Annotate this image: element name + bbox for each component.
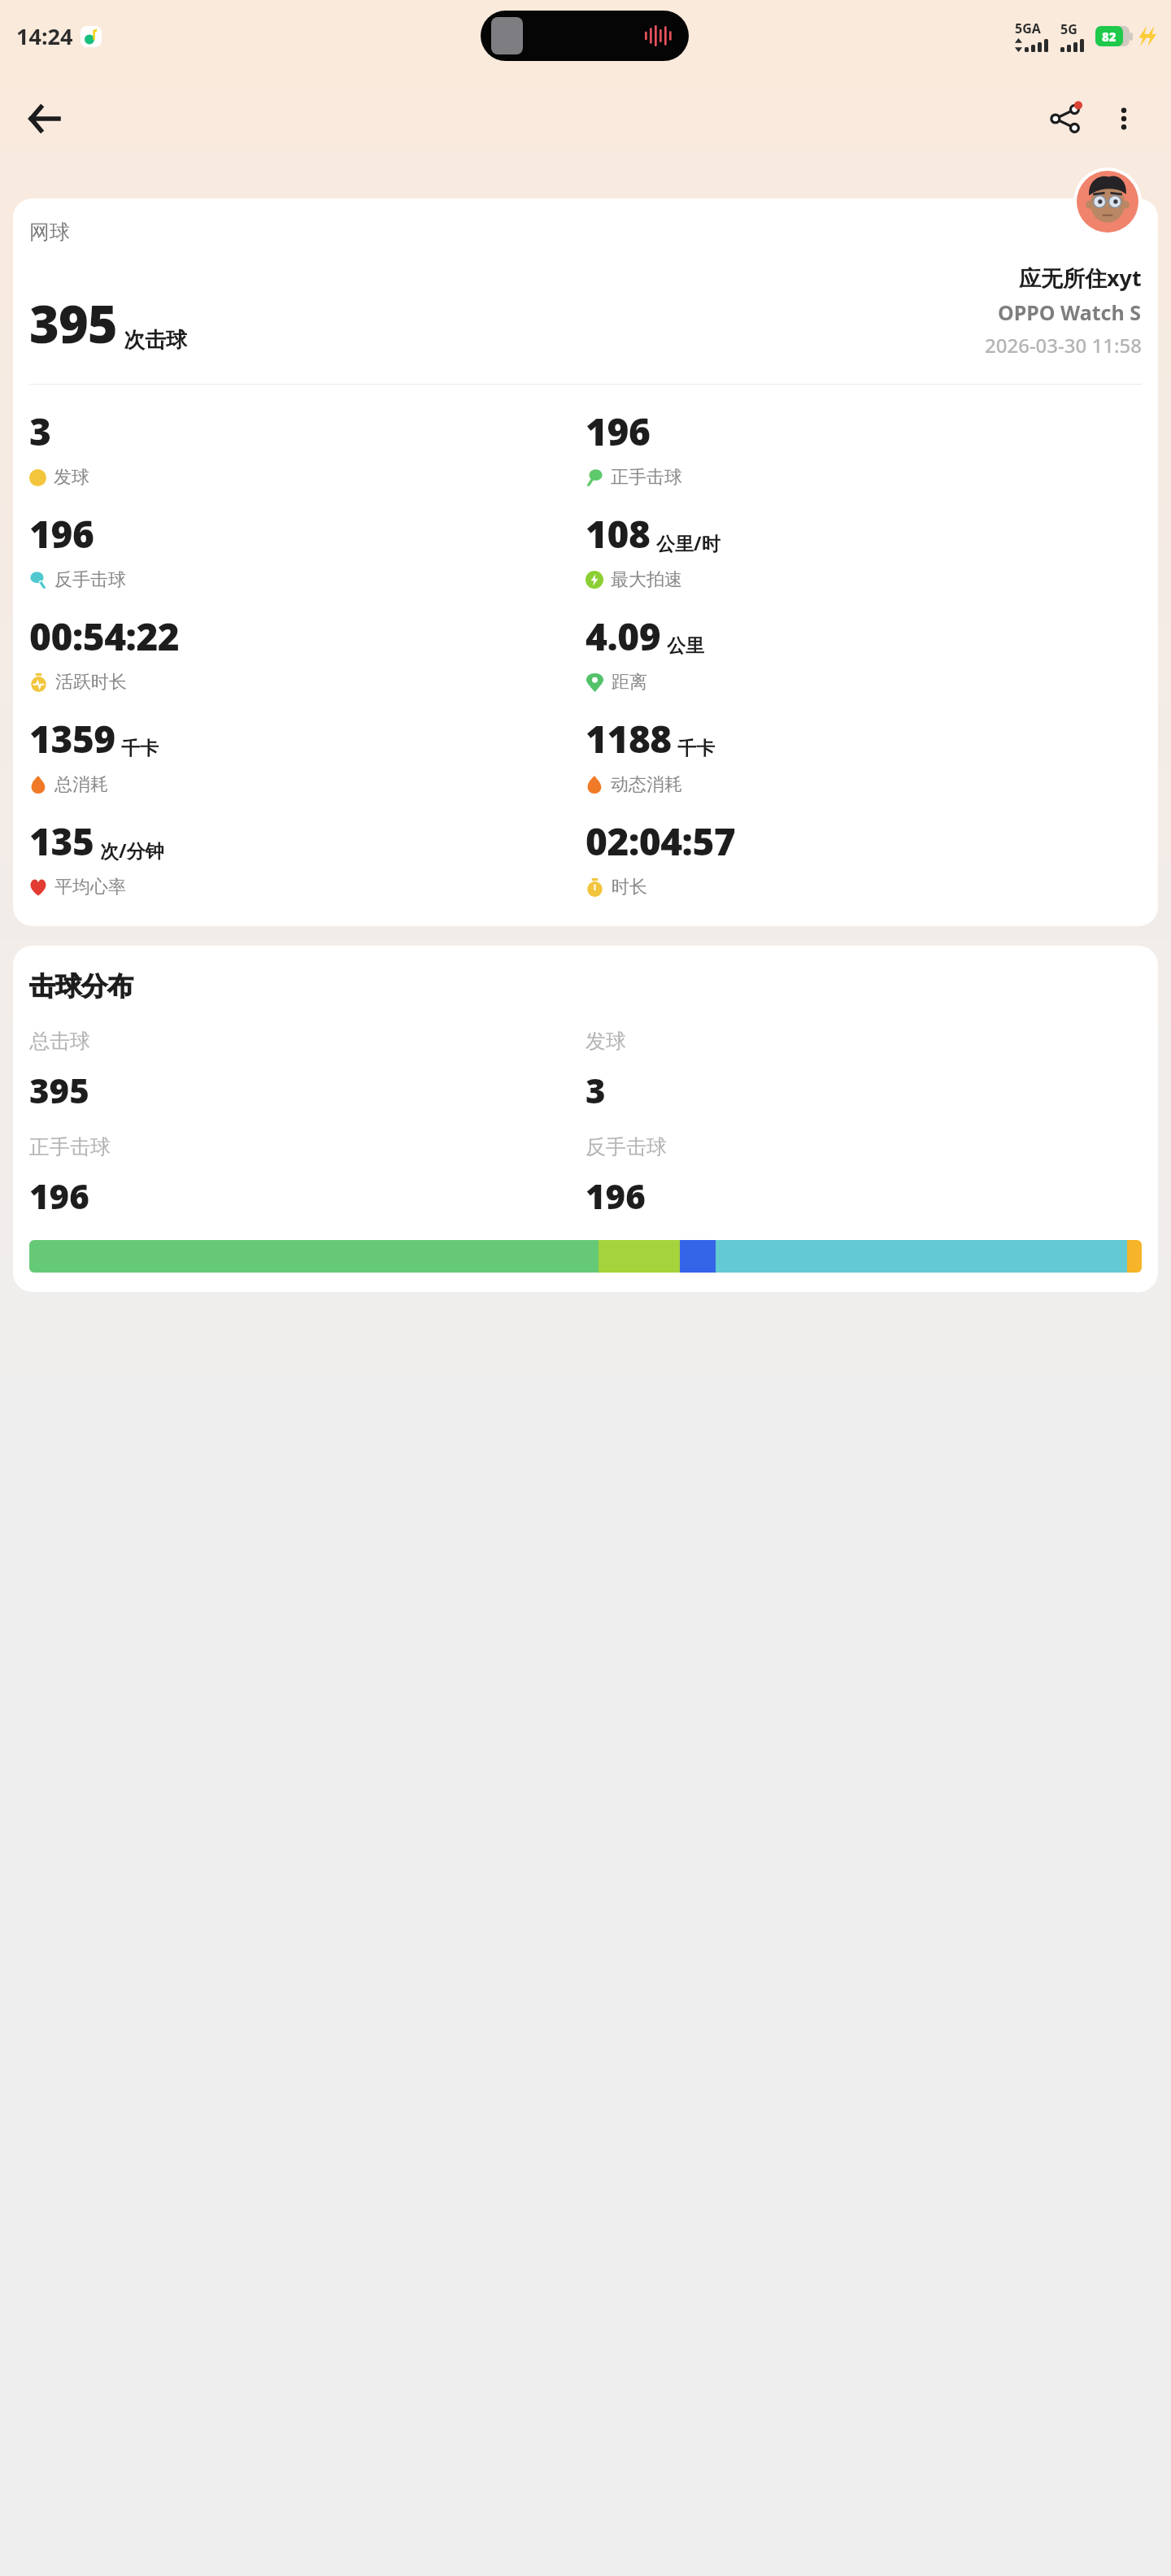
staticText: 395 — [29, 1067, 89, 1113]
staticText: 4.09 — [585, 611, 661, 662]
staticText: 正手击球 — [611, 466, 682, 489]
staticText: 196 — [29, 508, 94, 559]
staticText: 动态消耗 — [611, 773, 682, 796]
staticText: 1188 — [585, 713, 672, 764]
staticText: 14:24 — [16, 21, 73, 51]
staticText: 196 — [585, 1173, 646, 1219]
staticText: 3 — [585, 1067, 606, 1113]
staticText: 02:04:57 — [585, 816, 736, 867]
button[interactable]: More options — [1095, 89, 1153, 148]
staticText: 活跃时长 — [55, 671, 127, 694]
staticText: 196 — [29, 1173, 89, 1219]
staticText: 发球 — [54, 466, 89, 489]
staticText: 3 — [29, 406, 51, 457]
staticText: 千卡 — [677, 737, 715, 760]
staticText: 发球 — [585, 1029, 626, 1054]
staticText: 最大拍速 — [611, 568, 682, 591]
staticText: 反手击球 — [585, 1134, 667, 1160]
staticText: 196 — [585, 406, 651, 457]
staticText: OPPO Watch S — [998, 298, 1142, 326]
staticText: 5G — [1060, 20, 1077, 38]
staticText: 5GA — [1015, 20, 1041, 37]
staticText: 平均心率 — [54, 876, 126, 899]
staticText: 正手击球 — [29, 1134, 111, 1160]
staticText: 距离 — [612, 671, 647, 694]
staticText: 1359 — [29, 713, 115, 764]
staticText: 公里 — [667, 634, 704, 658]
button[interactable]: Back — [15, 89, 73, 148]
staticText: 击球分布 — [29, 970, 133, 1003]
button[interactable]: 击球分布 — [13, 946, 1158, 1292]
staticText: 时长 — [612, 876, 647, 899]
staticText: 总击球 — [29, 1029, 90, 1054]
staticText: 395 — [29, 289, 117, 359]
staticText: 次击球 — [124, 327, 187, 354]
staticText: 82 — [1102, 28, 1117, 45]
staticText: 108 — [585, 508, 651, 559]
staticText: 00:54:22 — [29, 611, 180, 662]
button[interactable]: 网球 — [13, 198, 1158, 926]
staticText: 网球 — [29, 220, 70, 245]
staticText: 总消耗 — [54, 773, 108, 796]
button[interactable]: Profile — [1077, 171, 1138, 233]
staticText: 公里/时 — [656, 530, 720, 555]
staticText: 千卡 — [121, 737, 159, 760]
button[interactable]: Share — [1036, 89, 1095, 148]
staticText: 应无所住xyt — [1019, 263, 1142, 293]
staticText: 反手击球 — [54, 568, 126, 591]
staticText: 2026-03-30 11:58 — [985, 332, 1142, 359]
staticText: 次/分钟 — [100, 838, 164, 863]
staticText: 135 — [29, 816, 94, 867]
